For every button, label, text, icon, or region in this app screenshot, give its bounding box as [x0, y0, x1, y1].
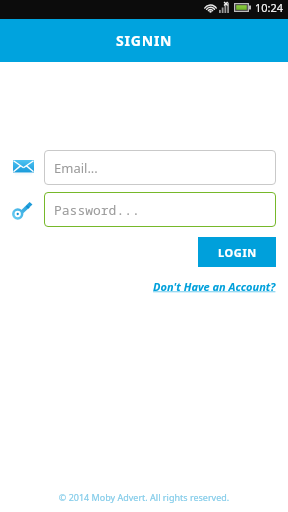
staticText: SIGNIN [116, 31, 173, 50]
other: Email [10, 155, 36, 181]
button[interactable]: Password... [44, 192, 276, 227]
staticText: Email... [54, 159, 98, 177]
staticText: 10:24 [255, 0, 284, 15]
button[interactable]: Email... [44, 150, 276, 185]
button[interactable]: LOGIN [198, 237, 276, 267]
staticText: LOGIN [218, 245, 257, 260]
staticText: © 2014 Moby Advert. All rights reserved. [0, 491, 288, 503]
other: Password [10, 197, 36, 223]
staticText: Don't Have an Account? [153, 279, 276, 294]
staticText: Password... [54, 201, 140, 219]
button[interactable]: Don't Have an Account? [153, 279, 276, 294]
